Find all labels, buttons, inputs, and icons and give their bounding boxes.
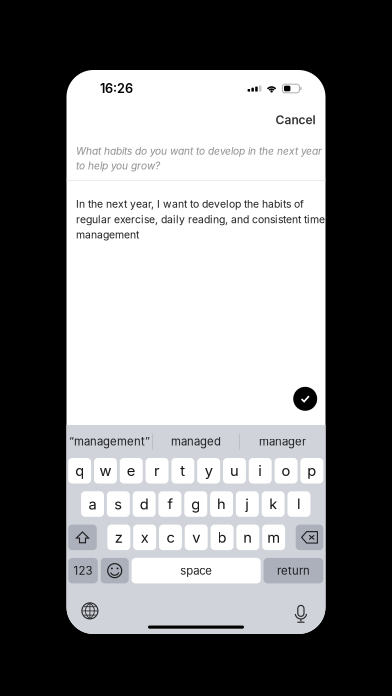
- button[interactable]: a: [81, 491, 104, 517]
- button[interactable]: Submit: [293, 387, 317, 411]
- button[interactable]: Next keyboard: [76, 597, 104, 625]
- button[interactable]: managed: [153, 425, 239, 458]
- button[interactable]: p: [300, 458, 323, 483]
- staticText: return: [277, 564, 310, 577]
- staticText: What habits do you want to develop in th…: [76, 145, 322, 172]
- staticText: d: [140, 495, 149, 513]
- button[interactable]: y: [197, 458, 220, 483]
- button[interactable]: l: [287, 491, 310, 517]
- button[interactable]: x: [133, 525, 156, 550]
- button[interactable]: return: [264, 558, 323, 583]
- button[interactable]: z: [107, 525, 130, 550]
- staticText: space: [180, 564, 212, 577]
- staticText: e: [127, 462, 136, 480]
- staticText: In the next year, I want to develop the …: [76, 198, 325, 241]
- button[interactable]: f: [158, 491, 181, 517]
- button[interactable]: w: [94, 458, 117, 483]
- staticText: h: [217, 495, 226, 513]
- button[interactable]: r: [146, 458, 168, 483]
- staticText: 16:26: [100, 81, 133, 96]
- staticText: managed: [171, 435, 221, 448]
- staticText: b: [217, 528, 226, 546]
- button[interactable]: v: [185, 525, 208, 550]
- staticText: x: [141, 528, 149, 546]
- staticText: l: [297, 495, 301, 513]
- button[interactable]: c: [159, 525, 182, 550]
- button[interactable]: 123: [68, 558, 98, 583]
- staticText: g: [191, 495, 200, 513]
- staticText: u: [230, 462, 239, 480]
- button[interactable]: i: [249, 458, 272, 483]
- staticText: v: [192, 528, 200, 546]
- button[interactable]: Emoji: [101, 558, 129, 583]
- button[interactable]: m: [262, 525, 285, 550]
- staticText: p: [307, 462, 316, 480]
- staticText: f: [167, 495, 172, 513]
- button[interactable]: k: [262, 491, 285, 517]
- staticText: “management”: [69, 435, 150, 448]
- button[interactable]: j: [236, 491, 259, 517]
- staticText: manager: [259, 435, 306, 448]
- button[interactable]: t: [171, 458, 194, 483]
- button[interactable]: n: [236, 525, 259, 550]
- staticText: j: [245, 495, 249, 513]
- staticText: s: [114, 495, 122, 513]
- staticText: r: [154, 462, 160, 480]
- button[interactable]: s: [107, 491, 130, 517]
- staticText: z: [115, 528, 123, 546]
- staticText: w: [99, 462, 111, 480]
- button[interactable]: space: [132, 558, 261, 583]
- staticText: i: [258, 462, 262, 480]
- staticText: n: [243, 528, 252, 546]
- button[interactable]: Cancel: [265, 107, 325, 133]
- button[interactable]: o: [275, 458, 297, 483]
- button[interactable]: “management”: [66, 425, 152, 458]
- staticText: k: [269, 495, 277, 513]
- button[interactable]: Shift: [68, 525, 97, 550]
- staticText: Cancel: [275, 113, 315, 127]
- button[interactable]: u: [223, 458, 246, 483]
- button[interactable]: manager: [240, 425, 325, 458]
- staticText: t: [180, 462, 185, 480]
- button[interactable]: Delete: [296, 525, 323, 550]
- button[interactable]: g: [184, 491, 207, 517]
- button[interactable]: b: [211, 525, 233, 550]
- button[interactable]: h: [210, 491, 233, 517]
- staticText: o: [282, 462, 291, 480]
- staticText: q: [75, 462, 84, 480]
- staticText: m: [267, 528, 280, 546]
- button[interactable]: e: [120, 458, 143, 483]
- button[interactable]: q: [68, 458, 91, 483]
- staticText: c: [166, 528, 174, 546]
- staticText: 123: [73, 564, 92, 577]
- button[interactable]: d: [133, 491, 156, 517]
- staticText: y: [205, 462, 213, 480]
- staticText: a: [89, 495, 97, 513]
- button[interactable]: Dictate: [287, 597, 315, 625]
